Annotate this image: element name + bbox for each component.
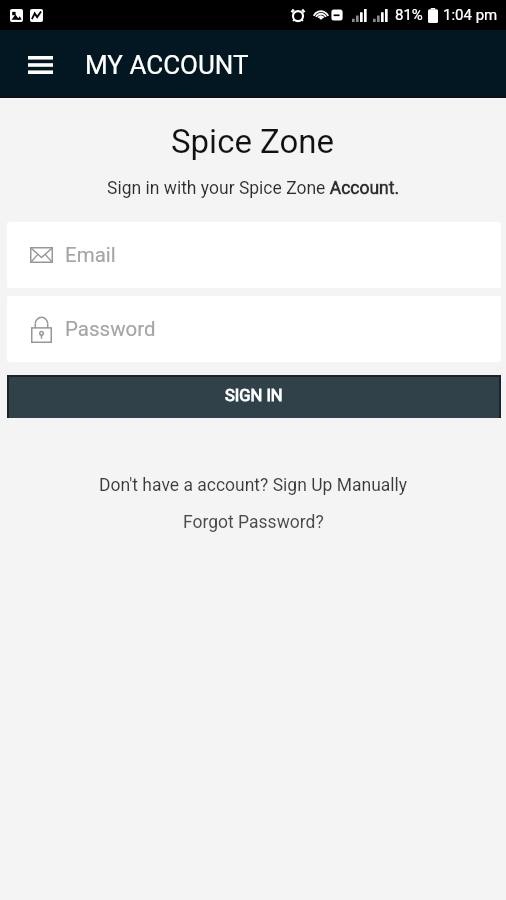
button[interactable]: Email xyxy=(7,222,501,288)
button[interactable]: Don't have a account? Sign Up Manually xyxy=(99,475,408,496)
button[interactable]: SIGN IN xyxy=(9,377,499,418)
staticText: Password xyxy=(65,317,156,341)
button[interactable]: Forgot Password? xyxy=(183,512,324,533)
button[interactable]: Password xyxy=(7,296,501,362)
staticText: Sign in with your Spice Zone Account. xyxy=(107,178,400,199)
staticText: MY ACCOUNT xyxy=(85,50,249,80)
staticText: Email xyxy=(65,243,116,267)
staticText: SIGN IN xyxy=(225,386,283,405)
staticText: 1:04 pm xyxy=(443,6,498,24)
button[interactable]: Open navigation menu xyxy=(16,41,64,89)
staticText: Spice Zone xyxy=(171,122,335,161)
staticText: 81% xyxy=(395,6,423,24)
